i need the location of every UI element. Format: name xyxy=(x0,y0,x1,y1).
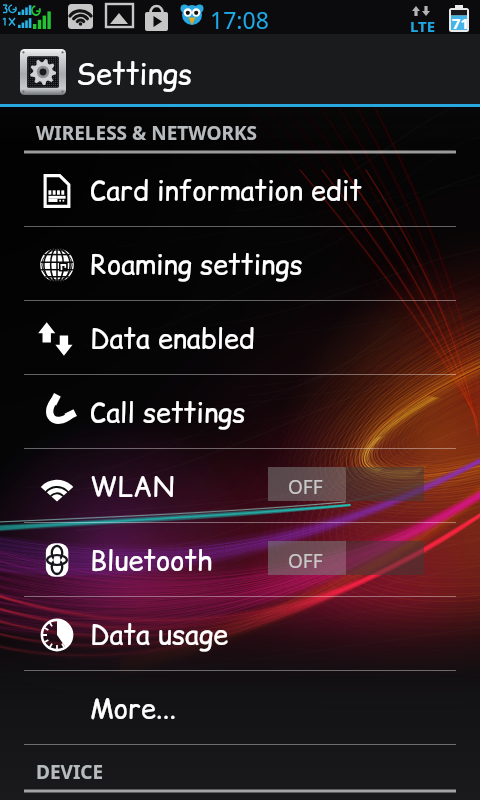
other: Settings icon xyxy=(20,49,66,95)
staticText: OFF xyxy=(288,474,323,500)
button[interactable]: Roaming settings xyxy=(0,228,480,302)
button[interactable]: OFF xyxy=(268,467,424,501)
staticText: Data usage xyxy=(90,616,229,654)
button[interactable]: OFF xyxy=(268,541,424,575)
staticText: WIRELESS & NETWORKS xyxy=(36,120,258,146)
staticText: Data enabled xyxy=(90,320,255,358)
button[interactable]: Data enabled xyxy=(0,302,480,376)
staticText: WLAN xyxy=(90,468,175,506)
staticText: Roaming settings xyxy=(90,246,303,284)
button[interactable]: Card information edit xyxy=(0,154,480,228)
staticText: 17:08 xyxy=(210,4,269,35)
button[interactable]: Bluetooth xyxy=(0,524,480,598)
button[interactable]: Data usage xyxy=(0,598,480,672)
staticText: Card information edit xyxy=(90,172,363,210)
staticText: OFF xyxy=(288,548,323,574)
staticText: Settings xyxy=(76,53,193,93)
button[interactable]: Call settings xyxy=(0,376,480,450)
staticText: More... xyxy=(90,690,176,728)
button[interactable]: WLAN xyxy=(0,450,480,524)
staticText: DEVICE xyxy=(36,759,104,785)
staticText: LTE xyxy=(410,16,436,36)
button[interactable]: More... xyxy=(0,672,480,746)
staticText: Call settings xyxy=(90,394,246,432)
staticText: Bluetooth xyxy=(90,542,213,580)
staticText: 71 xyxy=(452,13,470,33)
